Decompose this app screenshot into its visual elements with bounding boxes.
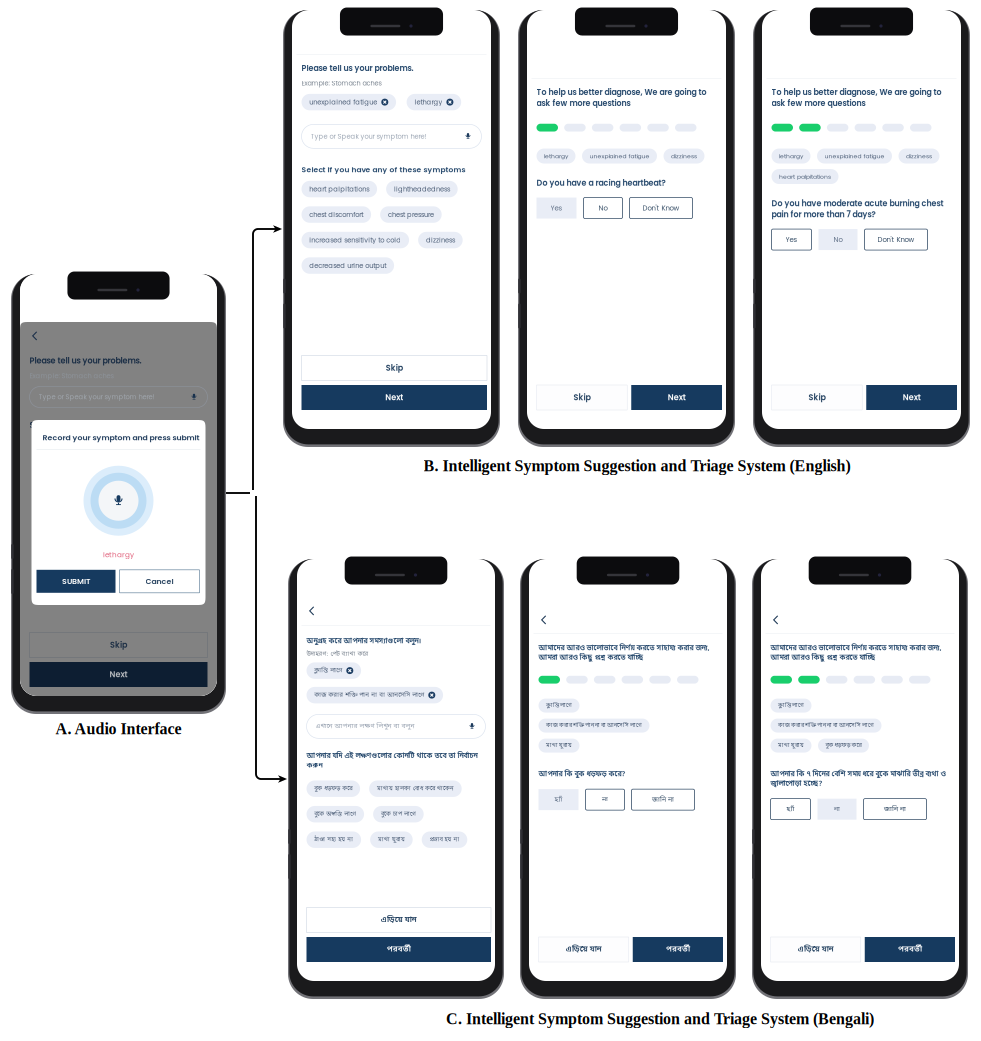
- staticText: এড়িয়ে যান: [798, 944, 834, 955]
- button[interactable]: ক্লান্তি লাগে: [306, 662, 361, 679]
- button[interactable]: dizziness: [663, 148, 704, 163]
- staticText: heart palpitations: [309, 184, 369, 194]
- button[interactable]: Next: [29, 662, 207, 687]
- button[interactable]: পরবর্তী: [306, 937, 491, 962]
- button[interactable]: মাথা ঘুরায়: [538, 739, 579, 753]
- button[interactable]: বুকে অস্বস্তি লাগে: [306, 806, 364, 822]
- button[interactable]: Skip: [771, 385, 862, 410]
- staticText: Cancel: [145, 576, 173, 587]
- staticText: হ্যাঁ: [786, 805, 794, 814]
- staticText: জানি না: [652, 795, 674, 804]
- button[interactable]: Back: [538, 613, 549, 627]
- button[interactable]: হ্যাঁ: [770, 799, 810, 820]
- button[interactable]: বুক ধড়ফড় করে: [818, 739, 869, 753]
- staticText: ক্লান্তি লাগে: [546, 702, 572, 709]
- button[interactable]: Skip: [301, 355, 487, 380]
- button[interactable]: Back: [29, 329, 40, 343]
- staticText: lethargy: [414, 97, 442, 107]
- button[interactable]: বুকে চাপ লাগে: [373, 806, 424, 822]
- staticText: To help us better diagnose, We are going…: [536, 87, 706, 109]
- button[interactable]: unexplained fatigue: [301, 94, 396, 110]
- button[interactable]: ক্লান্তি লাগে: [770, 699, 811, 713]
- staticText: chest pressure: [388, 210, 434, 219]
- button[interactable]: কাজ করার শক্তি পান না বা আনসেসি লাগে: [538, 719, 649, 733]
- staticText: মাথা ঘুরায়: [378, 836, 405, 844]
- staticText: To help us better diagnose, We are going…: [771, 87, 941, 109]
- button[interactable]: No: [818, 229, 857, 250]
- staticText: Please tell us your problems.: [301, 63, 413, 74]
- staticText: অনুগ্রহ করে আপনার সমস্যাগুলো বলুন।: [306, 637, 421, 646]
- button[interactable]: lethargy: [407, 94, 461, 110]
- button[interactable]: হ্যাঁ: [538, 789, 578, 810]
- button[interactable]: কাজ করার শক্তি পান না বা আনসেসি লাগে: [306, 687, 443, 703]
- button[interactable]: SUBMIT: [36, 570, 115, 593]
- button[interactable]: Next: [631, 385, 722, 410]
- button[interactable]: No: [583, 197, 622, 218]
- button[interactable]: lethargy: [771, 148, 810, 163]
- staticText: dizziness: [906, 152, 932, 160]
- button[interactable]: lethargy: [536, 148, 575, 163]
- staticText: হ্যাঁ: [554, 795, 562, 804]
- button[interactable]: ঠাণ্ডা সহ্য হয় না: [306, 831, 361, 848]
- button[interactable]: dizziness: [418, 232, 463, 248]
- button[interactable]: unexplained fatigue: [817, 148, 892, 163]
- staticText: Do you have moderate acute burning chest…: [771, 198, 943, 220]
- button[interactable]: মাথা ঘুরায়: [770, 739, 811, 753]
- staticText: ঠাণ্ডা সহ্য হয় না: [314, 836, 353, 844]
- staticText: A. Audio Interface: [55, 720, 181, 738]
- button[interactable]: unexplained fatigue: [582, 148, 657, 163]
- button[interactable]: Don't Know: [864, 229, 927, 250]
- staticText: ক্লান্তি লাগে: [314, 667, 342, 675]
- button[interactable]: জানি না: [631, 789, 694, 810]
- button[interactable]: Next: [866, 385, 957, 410]
- button[interactable]: ক্লান্তি লাগে: [538, 699, 579, 713]
- button[interactable]: এড়িয়ে যান: [770, 937, 861, 962]
- button[interactable]: Next: [301, 385, 487, 410]
- button[interactable]: প্রস্রাব হয় না: [422, 831, 467, 848]
- button[interactable]: Yes: [771, 229, 811, 250]
- button[interactable]: decreased urine output: [301, 257, 394, 274]
- button[interactable]: না: [817, 799, 856, 820]
- staticText: C. Intelligent Symptom Suggestion and Tr…: [446, 1010, 874, 1028]
- staticText: জানি না: [884, 805, 906, 814]
- staticText: পরবর্তী: [898, 944, 922, 955]
- button[interactable]: বুক ধড়ফড় করে: [306, 780, 360, 797]
- button[interactable]: dizziness: [898, 148, 939, 163]
- button[interactable]: chest discomfort: [301, 206, 371, 223]
- button[interactable]: Skip: [29, 632, 207, 657]
- button[interactable]: এড়িয়ে যান: [538, 937, 629, 962]
- button[interactable]: Don't Know: [629, 197, 692, 218]
- button[interactable]: Cancel: [119, 570, 199, 593]
- staticText: মাথা ঘুরায়: [778, 742, 804, 749]
- button[interactable]: Back: [306, 604, 317, 618]
- staticText: Skip: [386, 362, 403, 374]
- button[interactable]: মাথায় হালকা বোধ করে থাকেন: [369, 780, 462, 797]
- staticText: Skip: [573, 392, 590, 403]
- button[interactable]: Yes: [536, 197, 576, 218]
- staticText: বুকে চাপ লাগে: [381, 810, 416, 818]
- button[interactable]: এড়িয়ে যান: [306, 907, 491, 932]
- staticText: উদাহরণ: পেট ব্যাথা করে: [306, 650, 368, 658]
- button[interactable]: lightheadedness: [386, 181, 458, 197]
- staticText: Example: Stomach aches: [301, 79, 381, 88]
- button[interactable]: chest pressure: [380, 206, 442, 223]
- button[interactable]: heart palpitations: [301, 181, 377, 197]
- staticText: lethargy: [779, 152, 803, 160]
- staticText: Next: [668, 392, 686, 403]
- button[interactable]: heart palpitations: [771, 169, 838, 184]
- button[interactable]: জানি না: [863, 799, 926, 820]
- staticText: আমাদের আরও ভালোভাবে নির্ণয় করতে সাহায্য…: [538, 644, 709, 663]
- button[interactable]: না: [585, 789, 624, 810]
- button[interactable]: increased sensitivity to cold: [301, 232, 409, 248]
- button[interactable]: কাজ করার শক্তি পান না বা আনসেসি লাগে: [770, 719, 881, 733]
- button[interactable]: পরবর্তী: [633, 937, 723, 962]
- button[interactable]: Skip: [536, 385, 627, 410]
- button[interactable]: পরবর্তী: [865, 937, 955, 962]
- staticText: No: [598, 203, 607, 213]
- staticText: কাজ করার শক্তি পান না বা আনসেসি লাগে: [314, 691, 424, 699]
- button[interactable]: মাথা ঘুরায়: [370, 831, 413, 848]
- staticText: প্রস্রাব হয় না: [429, 836, 459, 844]
- staticText: Skip: [808, 392, 825, 403]
- button[interactable]: Back: [770, 613, 781, 627]
- staticText: decreased urine output: [309, 261, 386, 270]
